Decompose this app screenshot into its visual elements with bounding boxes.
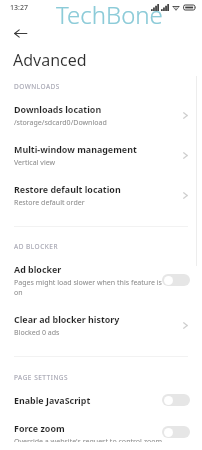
- button[interactable]: Restore default location: [0, 175, 202, 215]
- button[interactable]: Back: [4, 17, 36, 49]
- staticText: Ad blocker: [14, 263, 62, 275]
- staticText: Restore default location: [14, 183, 121, 195]
- staticText: Pages might load slower when this featur…: [14, 277, 165, 297]
- button[interactable]: Clear ad blocker history: [0, 305, 202, 345]
- staticText: Multi-window management: [14, 143, 137, 155]
- staticText: Advanced: [13, 49, 87, 71]
- button[interactable]: Force zoom: [0, 414, 202, 450]
- staticText: /storage/sdcard0/Download: [14, 117, 107, 127]
- staticText: Vertical view: [14, 157, 56, 167]
- staticText: TechBone: [56, 0, 163, 31]
- staticText: Force zoom: [14, 422, 65, 434]
- staticText: Restore default order: [14, 197, 85, 207]
- staticText: Blocked 0 ads: [14, 327, 60, 337]
- button[interactable]: Multi-window management: [0, 135, 202, 175]
- button[interactable]: Force zoom: [162, 426, 190, 438]
- staticText: AD BLOCKER: [14, 242, 58, 251]
- staticText: PAGE SETTINGS: [14, 373, 69, 382]
- staticText: Clear ad blocker history: [14, 313, 120, 325]
- button[interactable]: Enable JavaScript: [0, 386, 202, 414]
- staticText: DOWNLOADS: [14, 82, 60, 91]
- staticText: Downloads location: [14, 103, 102, 115]
- button[interactable]: Ad blocker: [162, 274, 190, 286]
- button[interactable]: Downloads location: [0, 95, 202, 135]
- staticText: 13:27: [10, 3, 28, 13]
- staticText: Override a website's request to control …: [14, 436, 165, 442]
- staticText: Enable JavaScript: [14, 394, 91, 406]
- button[interactable]: Ad blocker: [0, 255, 202, 305]
- button[interactable]: Enable JavaScript: [162, 394, 190, 406]
